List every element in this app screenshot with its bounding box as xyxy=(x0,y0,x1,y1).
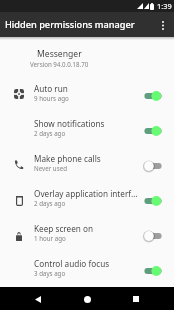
staticText: 2 days ago xyxy=(34,129,66,137)
button[interactable]: Keep screen on xyxy=(0,215,174,250)
button[interactable]: Home xyxy=(76,288,98,310)
staticText: Keep screen on xyxy=(34,223,93,234)
button[interactable]: Make phone calls xyxy=(0,145,174,180)
button[interactable]: Control audio focus xyxy=(0,250,174,285)
button[interactable]: Toggle off xyxy=(143,158,163,174)
button[interactable]: Back xyxy=(27,288,49,310)
staticText: Version 94.0.0.18.70 xyxy=(30,60,89,68)
button[interactable]: Toggle on xyxy=(143,88,163,104)
staticText: Show notifications xyxy=(34,118,105,129)
staticText: Auto run xyxy=(34,83,68,94)
button[interactable]: Toggle on xyxy=(143,263,163,279)
button[interactable]: Auto run xyxy=(0,75,174,110)
button[interactable]: Recent apps xyxy=(125,288,147,310)
button[interactable]: Toggle on xyxy=(143,193,163,209)
staticText: Messenger xyxy=(37,48,82,60)
staticText: 2 days ago xyxy=(34,199,66,207)
button[interactable]: Toggle on xyxy=(143,123,163,139)
staticText: 3 days ago xyxy=(34,269,66,277)
staticText: 9 hours ago xyxy=(34,94,69,102)
staticText: Make phone calls xyxy=(34,153,101,164)
button[interactable]: Toggle off xyxy=(143,228,163,244)
staticText: Hidden permissions manager xyxy=(5,18,135,31)
staticText: Overlay application interf… xyxy=(34,188,138,199)
staticText: 1:39 xyxy=(157,1,172,11)
button[interactable]: More options xyxy=(152,14,174,36)
button[interactable]: Show notifications xyxy=(0,110,174,145)
staticText: 1 hour ago xyxy=(34,234,66,242)
staticText: Control audio focus xyxy=(34,258,110,269)
staticText: Never used xyxy=(34,164,67,172)
button[interactable]: Overlay application interf… xyxy=(0,180,174,215)
